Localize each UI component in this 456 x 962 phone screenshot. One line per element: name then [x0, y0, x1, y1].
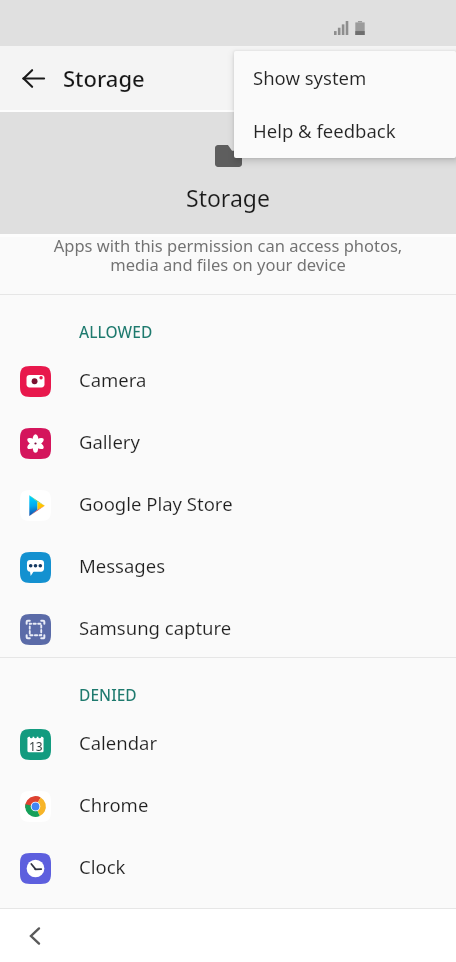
staticText: Chrome [79, 792, 149, 817]
button[interactable]: Messages [0, 537, 456, 599]
button[interactable]: Gallery [0, 413, 456, 475]
button[interactable]: Back [10, 55, 56, 101]
staticText: Clock [79, 854, 126, 879]
staticText: Camera [79, 367, 147, 392]
staticText: Show system [253, 65, 367, 90]
staticText: Storage [186, 182, 270, 213]
staticText: Messages [79, 553, 165, 578]
staticText: Help & feedback [253, 118, 396, 143]
staticText: Samsung capture [79, 615, 232, 640]
button[interactable]: Google Play Store [0, 475, 456, 537]
button[interactable]: Clock [0, 838, 456, 900]
button[interactable]: Help & feedback [234, 104, 456, 157]
staticText: Storage [63, 63, 145, 93]
button[interactable]: Chrome [0, 776, 456, 838]
staticText: Gallery [79, 429, 140, 454]
button[interactable]: Camera [0, 351, 456, 413]
staticText: Google Play Store [79, 491, 233, 516]
button[interactable]: 13 [0, 714, 456, 776]
staticText: DENIED [79, 684, 137, 705]
button[interactable]: Back [13, 914, 57, 958]
staticText: Apps with this permission can access pho… [0, 234, 456, 276]
staticText: Calendar [79, 730, 158, 755]
button[interactable]: Show system [234, 51, 456, 104]
staticText: 13 [29, 738, 43, 754]
button[interactable]: Samsung capture [0, 599, 456, 661]
staticText: ALLOWED [79, 321, 153, 342]
